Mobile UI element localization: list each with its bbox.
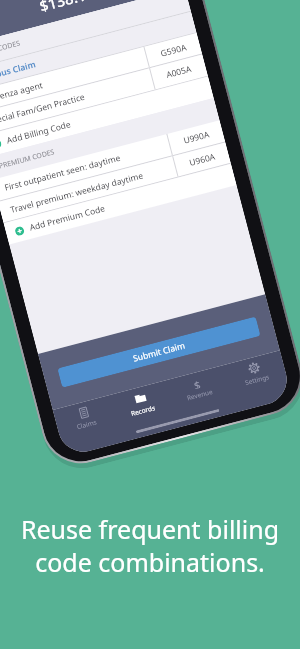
staticText: Claims <box>76 417 98 431</box>
staticText: Special Fam/Gen Practice <box>0 91 87 128</box>
staticText: Previous Claim <box>0 58 38 85</box>
other: Settings <box>247 361 261 375</box>
button[interactable]: Influenza agent <box>0 33 202 113</box>
button[interactable]: Settings <box>223 350 292 413</box>
button[interactable]: Submit Claim <box>57 316 261 388</box>
other: Records <box>133 391 148 406</box>
button[interactable]: Revenue <box>166 365 235 428</box>
button[interactable]: Add Billing Code <box>0 77 214 158</box>
staticText: PREMIUM CODES <box>0 147 56 171</box>
button[interactable]: Claims <box>53 395 121 457</box>
staticText: U990A <box>182 128 211 147</box>
button[interactable]: Add Premium Code <box>4 164 237 245</box>
staticText: Add Billing Code <box>5 118 72 147</box>
staticText: Revenue <box>186 387 214 402</box>
button[interactable]: Travel premium: weekday daytime <box>0 142 231 222</box>
button[interactable]: First outpatient seen: daytime <box>0 120 225 201</box>
staticText: $ <box>192 377 202 389</box>
staticText: First outpatient seen: daytime <box>3 152 122 194</box>
staticText: Submit Claim <box>132 339 187 365</box>
button[interactable]: Records <box>109 380 178 443</box>
staticText: Reuse frequent billing code combinations… <box>0 512 300 579</box>
other: Claims <box>77 406 91 419</box>
other: Revenue <box>190 376 204 390</box>
staticText: Influenza agent <box>0 79 44 107</box>
button[interactable]: Special Fam/Gen Practice <box>0 54 208 135</box>
staticText: Settings <box>244 372 270 387</box>
button[interactable]: Previous Claim <box>0 12 196 92</box>
staticText: U960A <box>188 150 217 169</box>
staticText: Travel premium: weekday daytime <box>9 170 145 216</box>
staticText: G590A <box>159 41 188 60</box>
staticText: Add Premium Code <box>28 202 107 234</box>
staticText: A005A <box>165 63 193 81</box>
staticText: Records <box>130 403 156 418</box>
staticText: BILLING CODES <box>0 38 22 61</box>
staticText: $138.10 <box>37 0 96 16</box>
